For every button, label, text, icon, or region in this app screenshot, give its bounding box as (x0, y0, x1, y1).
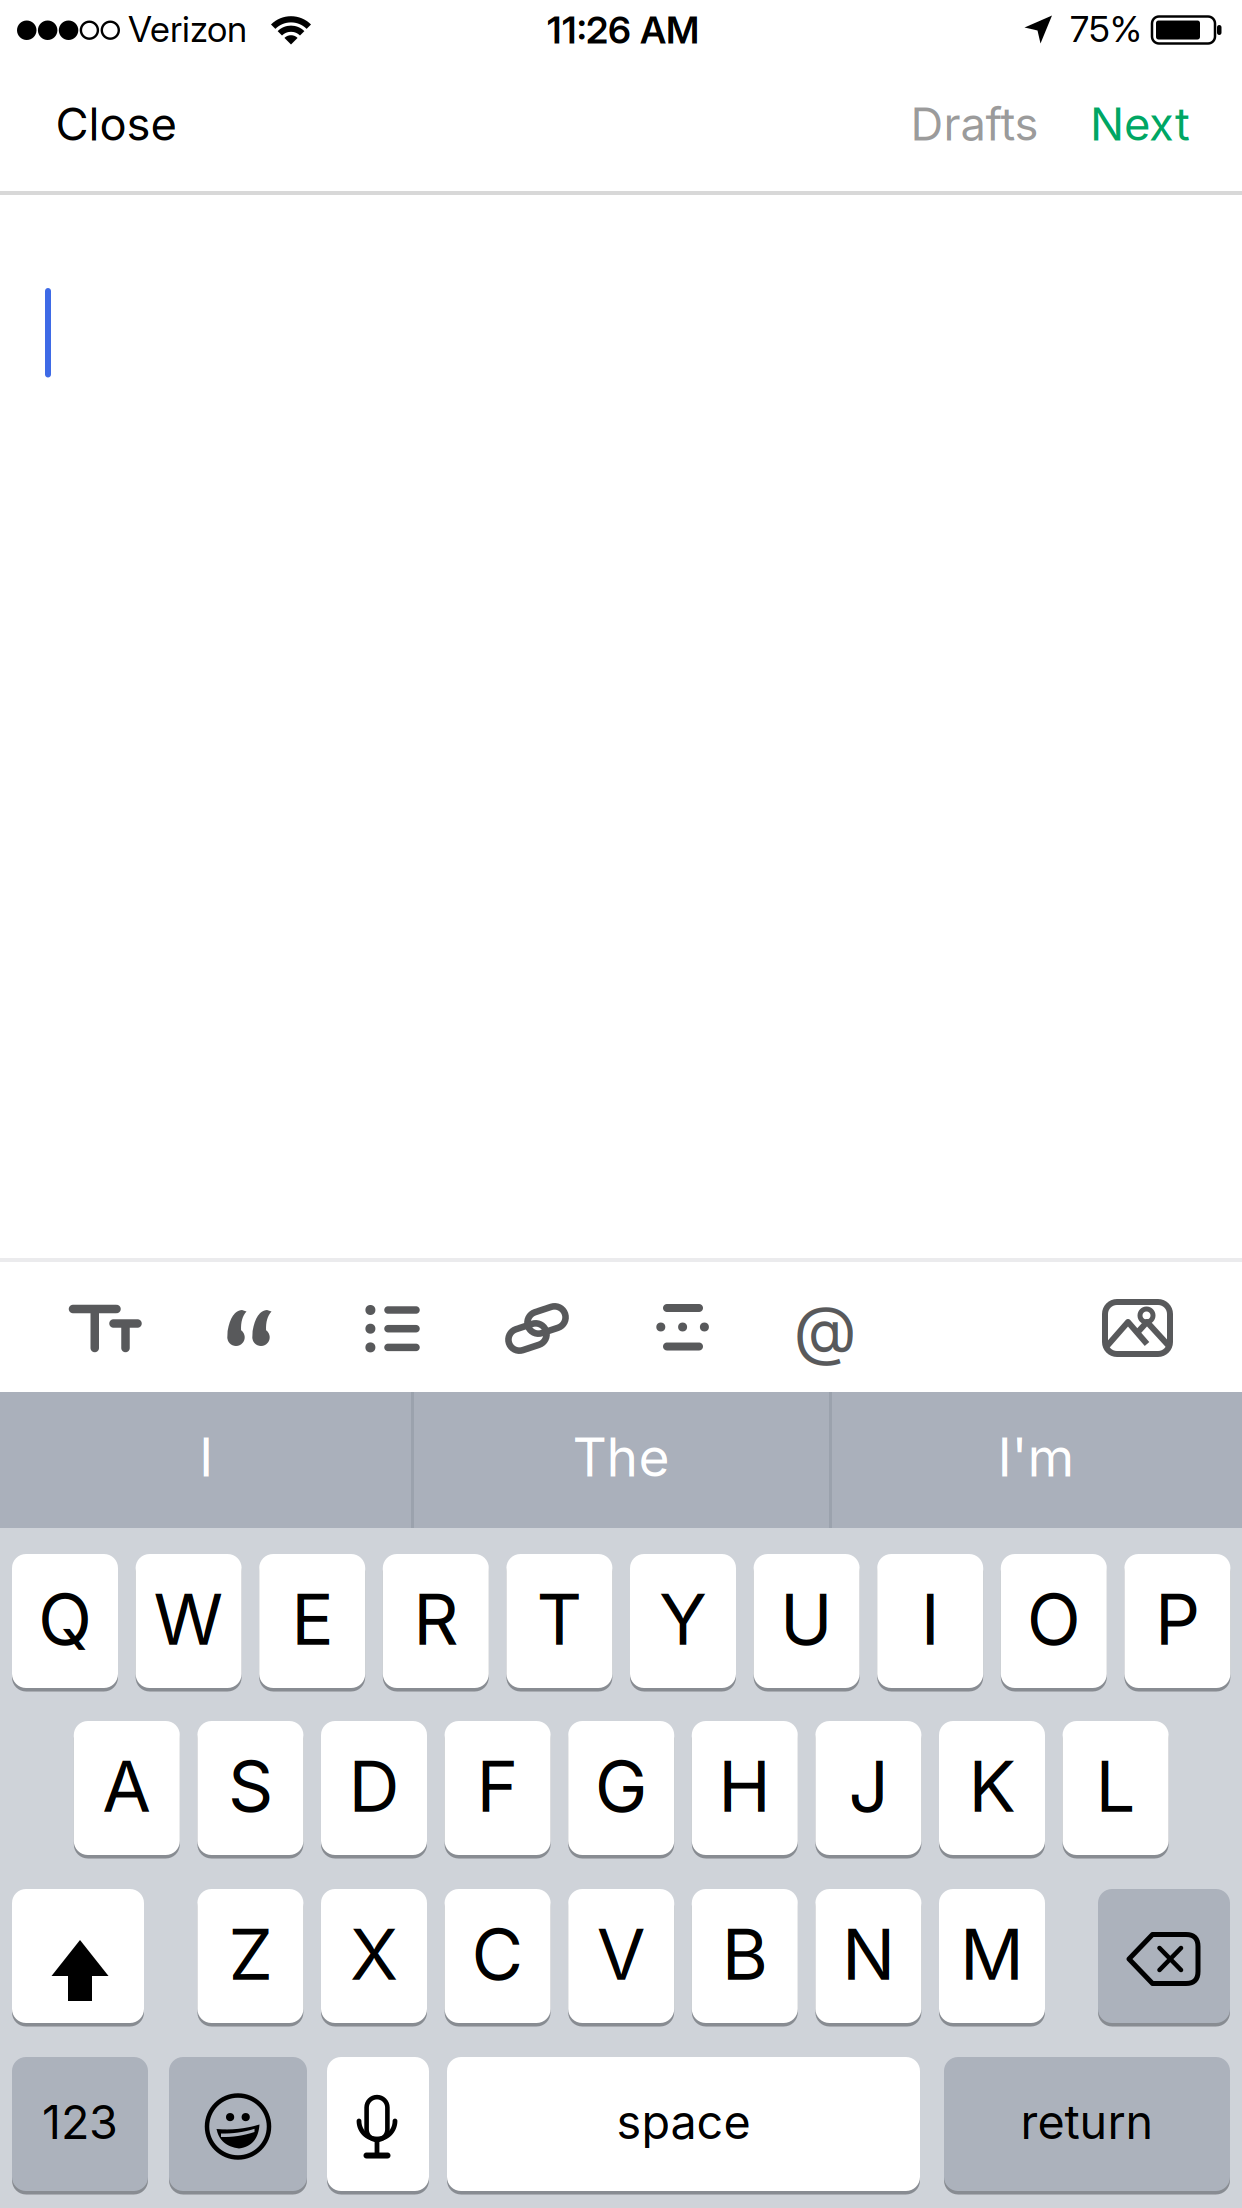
staticText: Next (1090, 97, 1190, 151)
staticText: E (291, 1577, 333, 1661)
staticText: 123 (42, 2094, 118, 2150)
staticText: F (477, 1744, 519, 1828)
staticText: G (595, 1744, 648, 1828)
staticText: 75% (1070, 8, 1142, 50)
staticText: N (842, 1912, 895, 1996)
staticText: L (1096, 1744, 1136, 1828)
staticText: return (1020, 2094, 1153, 2150)
staticText: @ (793, 1291, 856, 1368)
staticText: H (718, 1744, 771, 1828)
staticText: S (228, 1744, 273, 1828)
staticText: 11:26 AM (547, 8, 699, 52)
staticText: Verizon (128, 8, 247, 50)
staticText: Q (38, 1577, 92, 1661)
staticText: D (348, 1744, 399, 1828)
staticText: K (968, 1744, 1015, 1828)
staticText: Drafts (910, 97, 1038, 151)
staticText: C (472, 1912, 524, 1996)
staticText: B (722, 1912, 768, 1996)
staticText: Close (55, 97, 176, 151)
staticText: I (199, 1425, 213, 1488)
staticText: T (536, 1577, 582, 1661)
staticText: I (921, 1577, 940, 1661)
staticText: space (616, 2094, 750, 2150)
staticText: I'm (997, 1425, 1074, 1488)
staticText: W (154, 1577, 224, 1661)
staticText: Y (659, 1577, 707, 1661)
staticText: Z (228, 1912, 272, 1996)
staticText: J (848, 1744, 888, 1828)
staticText: O (1027, 1577, 1081, 1661)
staticText: X (350, 1912, 398, 1996)
staticText: U (780, 1577, 833, 1661)
staticText: M (960, 1912, 1024, 1996)
staticText: V (597, 1912, 646, 1996)
staticText: P (1155, 1577, 1200, 1661)
staticText: R (413, 1577, 458, 1661)
staticText: A (102, 1744, 151, 1828)
staticText: The (572, 1425, 669, 1488)
